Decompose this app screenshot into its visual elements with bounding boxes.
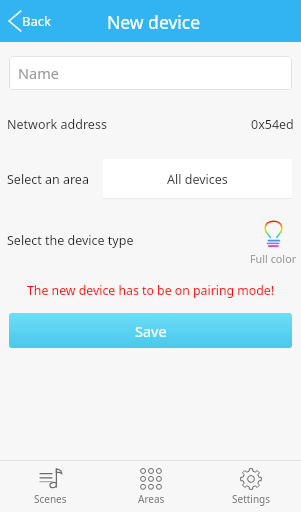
staticText: Save — [135, 321, 167, 341]
staticText: Areas — [138, 492, 165, 506]
staticText: 0x54ed — [251, 116, 294, 133]
staticText: Select the device type — [7, 232, 134, 249]
button[interactable]: Full color device type — [250, 220, 297, 266]
button[interactable]: Areas — [101, 461, 201, 512]
button[interactable]: Settings — [201, 461, 301, 512]
staticText: Full color — [250, 251, 297, 266]
staticText: New device — [107, 10, 201, 34]
button[interactable]: Scenes — [0, 461, 101, 512]
staticText: Back — [22, 12, 51, 30]
staticText: The new device has to be on pairing mode… — [0, 282, 301, 299]
staticText: All devices — [167, 171, 228, 188]
staticText: Network address — [7, 116, 107, 133]
button[interactable]: Save — [9, 313, 292, 348]
button[interactable]: Name — [9, 56, 292, 90]
staticText: Settings — [232, 492, 271, 506]
staticText: Name — [18, 63, 59, 83]
button[interactable]: Back — [0, 0, 56, 42]
staticText: Select an area — [7, 171, 89, 188]
button[interactable]: All devices — [103, 159, 292, 199]
staticText: Scenes — [34, 492, 67, 506]
